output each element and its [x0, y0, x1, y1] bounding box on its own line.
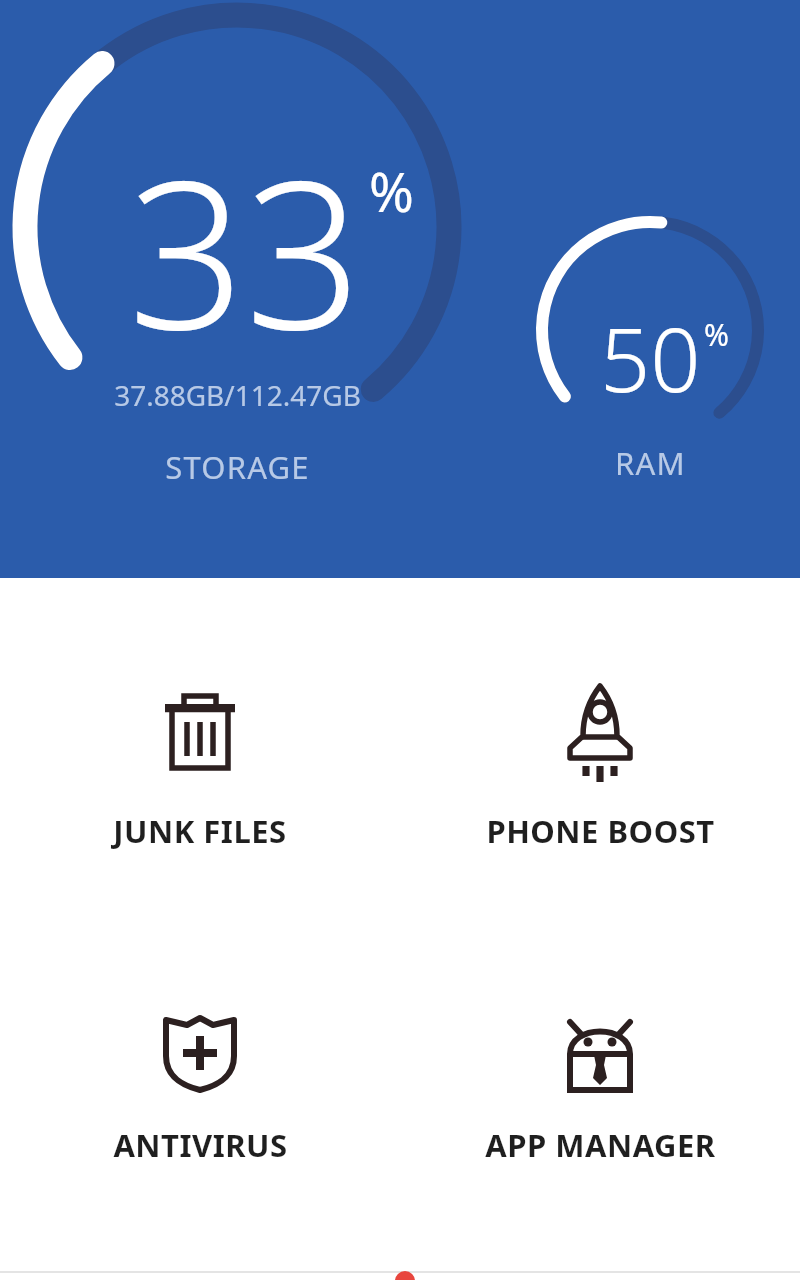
staticText: 33 — [128, 110, 363, 389]
button[interactable]: APP MANAGER — [400, 924, 800, 1270]
staticText: RAM — [615, 442, 686, 484]
staticText: 37.88GB/112.47GB — [114, 376, 361, 414]
button[interactable]: PHONE BOOST — [400, 578, 800, 924]
button[interactable]: JUNK FILES — [0, 578, 400, 924]
staticText: STORAGE — [165, 446, 310, 488]
staticText: % — [704, 314, 729, 355]
staticText: APP MANAGER — [485, 1124, 716, 1166]
staticText: JUNK FILES — [113, 810, 287, 852]
staticText: ANTIVIRUS — [113, 1124, 288, 1166]
staticText: PHONE BOOST — [486, 810, 715, 852]
staticText: % — [369, 154, 414, 228]
staticText: 50 — [600, 298, 701, 418]
button[interactable]: ANTIVIRUS — [0, 924, 400, 1270]
